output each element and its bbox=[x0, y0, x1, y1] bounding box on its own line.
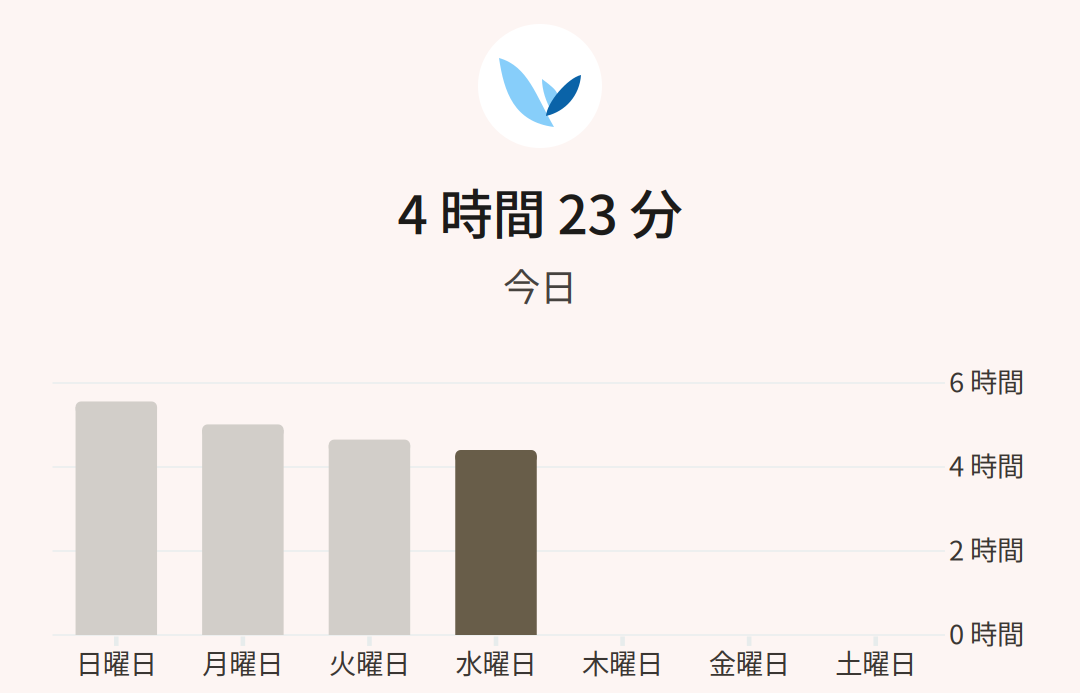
button[interactable]: 金曜日 bbox=[0, 0, 1080, 693]
button[interactable]: 水曜日 bbox=[0, 0, 1080, 693]
staticText: 2 時間 bbox=[949, 529, 1024, 568]
button[interactable]: アプリ bbox=[478, 24, 602, 148]
staticText: 火曜日 bbox=[329, 642, 410, 682]
button[interactable]: 日曜日 bbox=[0, 0, 1080, 693]
staticText: 金曜日 bbox=[709, 642, 790, 682]
staticText: 土曜日 bbox=[835, 642, 916, 682]
button[interactable]: 木曜日 bbox=[0, 0, 1080, 693]
staticText: 日曜日 bbox=[76, 642, 157, 682]
staticText: 今日 bbox=[503, 258, 577, 312]
staticText: 4 時間 23 分 bbox=[397, 172, 682, 250]
staticText: 0 時間 bbox=[949, 613, 1024, 652]
button[interactable]: 土曜日 bbox=[0, 0, 1080, 693]
button[interactable]: 月曜日 bbox=[0, 0, 1080, 693]
button[interactable]: 火曜日 bbox=[0, 0, 1080, 693]
staticText: 6 時間 bbox=[949, 361, 1024, 400]
staticText: 木曜日 bbox=[582, 642, 663, 682]
staticText: 4 時間 bbox=[949, 445, 1024, 484]
staticText: 月曜日 bbox=[202, 642, 283, 682]
staticText: 水曜日 bbox=[455, 642, 536, 682]
